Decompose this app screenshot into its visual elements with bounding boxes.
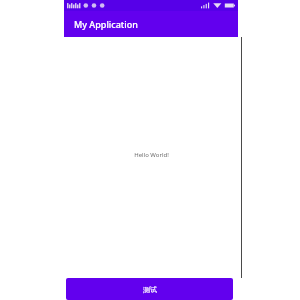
button[interactable]: 测试 bbox=[66, 278, 233, 300]
staticText: Hello World! bbox=[134, 151, 169, 159]
staticText: My Application bbox=[74, 18, 138, 30]
staticText: 测试 bbox=[143, 285, 157, 294]
button[interactable]: My Application bbox=[64, 11, 238, 37]
